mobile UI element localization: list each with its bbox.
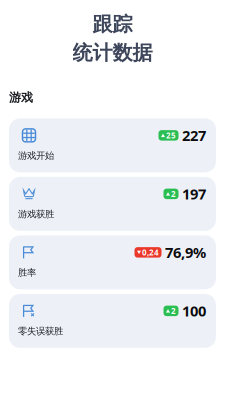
staticText: 197 <box>182 184 206 204</box>
staticText: 2 <box>171 306 176 316</box>
staticText: 统计数据 <box>72 41 152 65</box>
button[interactable]: 2 <box>9 294 216 348</box>
staticText: 跟踪 <box>92 12 132 37</box>
button[interactable]: 25 <box>9 118 216 172</box>
staticText: 游戏开始 <box>18 150 54 161</box>
staticText: 游戏获胜 <box>18 208 54 220</box>
staticText: 76,9% <box>165 243 206 262</box>
staticText: 游戏 <box>9 90 33 105</box>
staticText: 25 <box>166 130 176 141</box>
staticText: 2 <box>171 189 176 199</box>
button[interactable]: 2 <box>9 177 216 231</box>
staticText: 227 <box>182 126 206 145</box>
staticText: 100 <box>182 301 206 321</box>
staticText: 0,24 <box>142 247 159 258</box>
staticText: 零失误获胜 <box>18 325 63 337</box>
button[interactable]: 0,24 <box>9 235 216 289</box>
staticText: 胜率 <box>18 267 36 278</box>
